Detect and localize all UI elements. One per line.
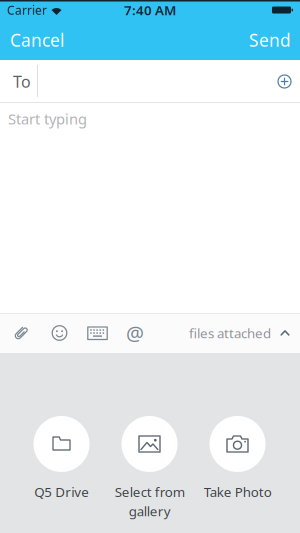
button[interactable]: Take Photo xyxy=(193,416,281,501)
staticText: 7:40 AM xyxy=(124,1,176,19)
button[interactable]: Mention xyxy=(124,321,146,344)
button[interactable]: Select from gallery xyxy=(105,416,193,520)
button[interactable]: Attach file xyxy=(9,321,33,345)
staticText: Start typing xyxy=(8,109,87,128)
button[interactable]: Add recipient xyxy=(278,75,291,88)
button[interactable]: Send xyxy=(249,28,291,51)
staticText: Take Photo xyxy=(203,483,271,501)
staticText: files attached xyxy=(189,324,271,342)
staticText: Q5 Drive xyxy=(34,483,89,501)
button[interactable]: Q5 Drive xyxy=(17,416,105,501)
button[interactable]: Keyboard xyxy=(86,321,109,344)
staticText: Carrier xyxy=(7,2,47,18)
button[interactable]: Cancel xyxy=(10,28,64,51)
staticText: Cancel xyxy=(10,28,64,51)
staticText: Send xyxy=(249,28,291,51)
button[interactable]: Hide attachments xyxy=(189,324,290,342)
staticText: To xyxy=(13,71,31,92)
staticText: Select from gallery xyxy=(114,483,184,520)
staticText: @ xyxy=(126,320,144,346)
button[interactable]: Emoji xyxy=(48,321,71,344)
